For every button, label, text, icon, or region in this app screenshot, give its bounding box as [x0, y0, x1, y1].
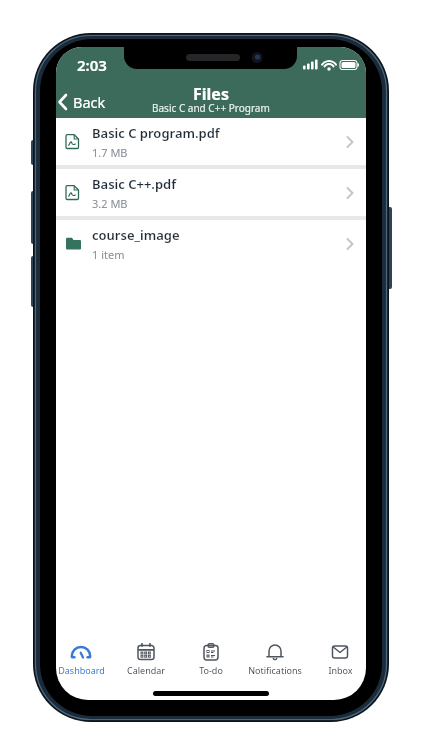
- button[interactable]: To-do: [166, 643, 256, 677]
- button[interactable]: Back: [57, 92, 106, 112]
- staticText: course_image: [92, 226, 180, 244]
- staticText: 1.7 MB: [92, 145, 128, 160]
- staticText: Files: [193, 83, 229, 105]
- staticText: Basic C program.pdf: [92, 124, 220, 142]
- staticText: Dashboard: [58, 664, 105, 676]
- button[interactable]: Basic C++.pdf: [56, 169, 366, 216]
- staticText: Basic C and C++ Program: [152, 101, 270, 115]
- staticText: Basic C++.pdf: [92, 175, 177, 193]
- button[interactable]: Dashboard: [56, 643, 126, 677]
- staticText: 3.2 MB: [92, 196, 128, 211]
- staticText: 1 item: [92, 247, 125, 262]
- button[interactable]: course_image: [56, 220, 366, 267]
- button[interactable]: Basic C program.pdf: [56, 118, 366, 165]
- staticText: Back: [73, 92, 106, 112]
- staticText: Inbox: [328, 664, 353, 676]
- staticText: To-do: [199, 664, 223, 676]
- staticText: Notifications: [248, 664, 302, 676]
- staticText: Calendar: [127, 664, 165, 676]
- button[interactable]: Inbox: [295, 643, 366, 677]
- button[interactable]: Notifications: [230, 643, 320, 677]
- staticText: 2:03: [77, 55, 107, 75]
- button[interactable]: Calendar: [101, 643, 191, 677]
